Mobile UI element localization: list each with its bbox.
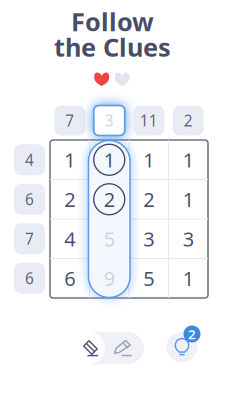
staticText: 1 [143,146,154,173]
staticText: 3 [183,225,194,252]
button[interactable]: 3 [130,220,167,257]
staticText: the Clues [54,30,171,64]
button[interactable]: 3 [89,102,129,138]
staticText: 2 [143,186,154,213]
staticText: 7 [25,228,34,249]
button[interactable]: 2 [51,180,88,218]
button[interactable]: 6 [11,258,47,298]
button[interactable]: Hint [165,330,199,364]
staticText: 6 [25,268,34,289]
button[interactable]: 1 [169,259,207,297]
button[interactable]: 1 [169,180,207,218]
staticText: 2 [64,186,75,213]
staticText: 2 [184,110,193,131]
button[interactable]: 4 [11,140,47,179]
button[interactable]: 1 [51,141,88,178]
button[interactable]: 2 [168,102,208,138]
staticText: 1 [183,265,194,292]
button[interactable]: 1 [169,141,207,178]
staticText: 1 [183,146,194,173]
button[interactable]: 9 [90,259,128,297]
staticText: 3 [105,110,114,131]
button[interactable]: 4 [51,220,88,257]
staticText: 2 [104,186,115,213]
staticText: 5 [143,265,154,292]
button[interactable]: 11 [129,102,168,138]
button[interactable]: 1 [130,141,167,178]
button[interactable]: 1 [90,141,128,178]
staticText: 6 [25,189,34,210]
staticText: 2 [188,325,196,343]
staticText: 1 [183,186,194,213]
staticText: 1 [104,146,115,173]
staticText: 3 [143,225,154,252]
button[interactable]: Pencil [106,332,140,364]
staticText: 7 [65,110,74,131]
button[interactable]: 6 [11,179,47,219]
staticText: 4 [64,225,75,252]
staticText: Follow [71,5,154,38]
button[interactable]: 7 [11,219,47,258]
button[interactable]: 5 [90,220,128,257]
staticText: 4 [25,149,34,170]
button[interactable]: 5 [130,259,167,297]
button[interactable]: 3 [169,220,207,257]
staticText: 5 [104,225,115,252]
staticText: 11 [140,110,158,131]
button[interactable]: 2 [90,180,128,218]
button[interactable]: Erase [72,332,106,364]
button[interactable]: 2 [130,180,167,218]
staticText: 1 [64,146,75,173]
button[interactable]: 7 [50,102,89,138]
button[interactable]: 6 [51,259,88,297]
staticText: 9 [104,265,115,292]
staticText: 6 [64,265,75,292]
